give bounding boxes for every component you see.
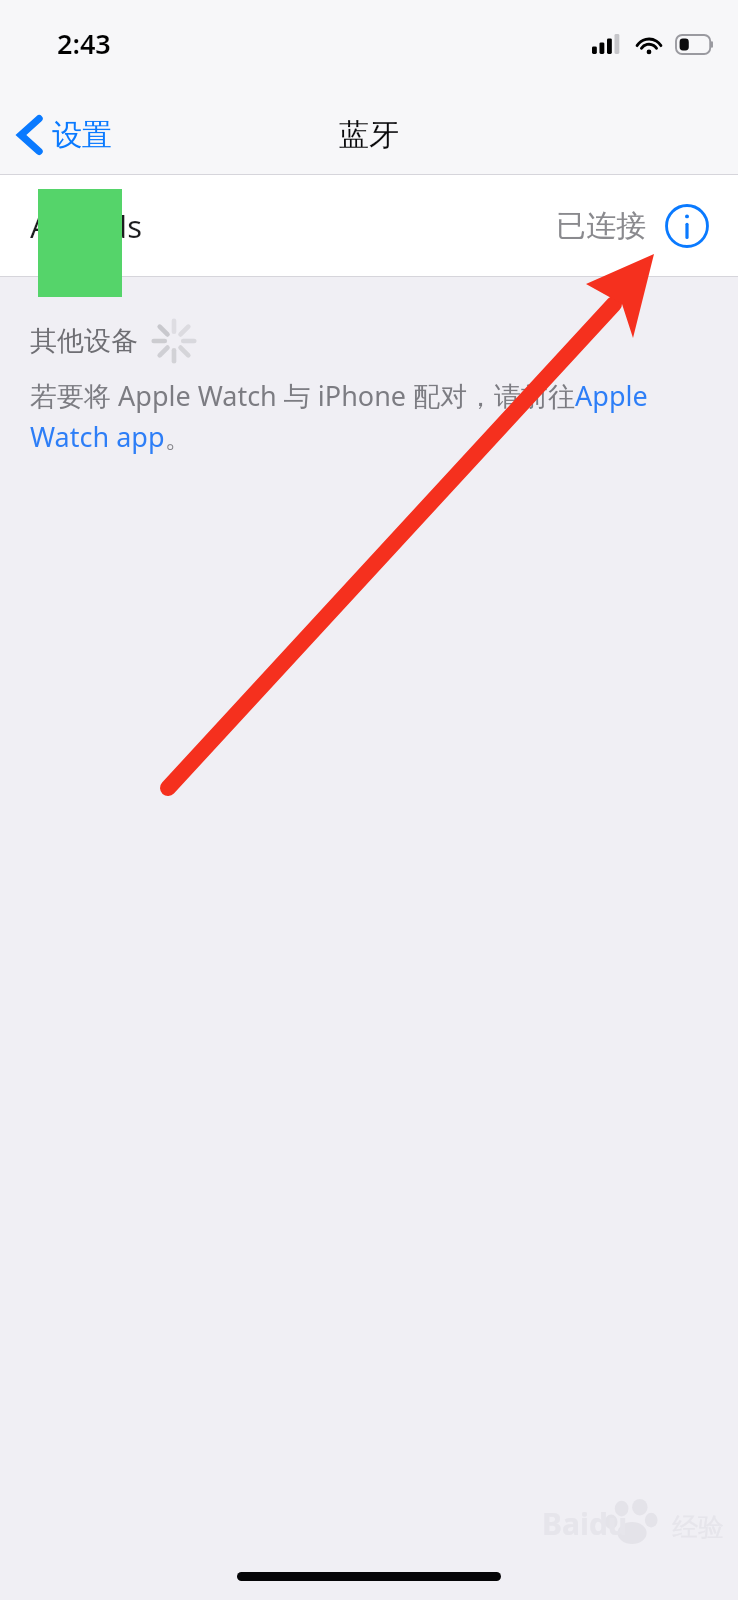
staticText: 已连接 [556,207,646,245]
staticText: 其他设备 [30,324,138,358]
staticText: 2:43 [57,25,111,62]
staticText: 设置 [52,116,112,154]
button[interactable]: AirPods [0,175,738,277]
staticText: 经验 [672,1511,724,1544]
button[interactable]: More Info [662,201,712,251]
staticText: 蓝牙 [339,116,399,154]
staticText: 若要将 Apple Watch 与 iPhone 配对，请前往Apple Wat… [30,377,682,455]
staticText: AirPods [30,205,143,247]
staticText: Baidu [542,1503,628,1544]
button[interactable]: 设置 [0,108,126,162]
